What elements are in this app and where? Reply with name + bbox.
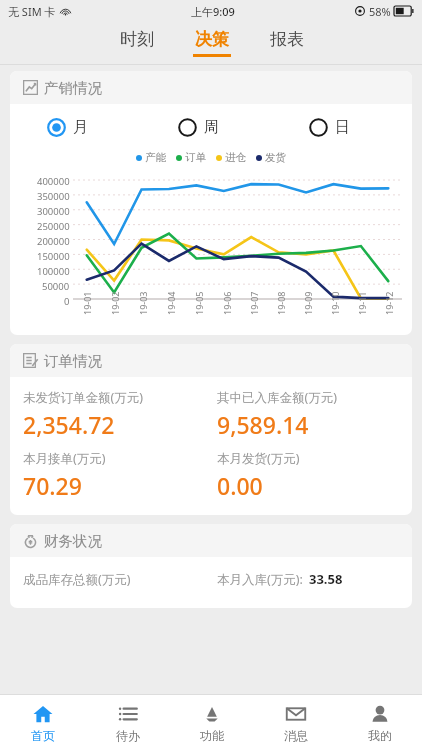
staticText: 进仓 bbox=[225, 151, 246, 164]
button[interactable]: 订单 bbox=[23, 344, 412, 377]
staticText: 19-05 bbox=[193, 291, 205, 315]
staticText: 产销情况 bbox=[44, 79, 102, 97]
button[interactable]: 财务 bbox=[23, 524, 412, 557]
staticText: 消息 bbox=[284, 728, 308, 743]
staticText: 350000 bbox=[37, 190, 70, 203]
staticText: 待办 bbox=[116, 728, 140, 743]
staticText: 19-08 bbox=[275, 291, 287, 315]
staticText: 150000 bbox=[37, 250, 70, 263]
staticText: 上午9:09 bbox=[191, 4, 235, 19]
staticText: 400000 bbox=[37, 175, 70, 188]
staticText: 300000 bbox=[37, 205, 70, 218]
staticText: 功能 bbox=[200, 728, 224, 743]
staticText: 0 bbox=[64, 295, 70, 308]
staticText: 70.29 bbox=[23, 470, 82, 501]
staticText: 首页 bbox=[31, 728, 55, 743]
staticText: 月 bbox=[73, 118, 88, 137]
staticText: 58% bbox=[369, 4, 391, 19]
staticText: 19-03 bbox=[137, 291, 149, 315]
staticText: 19-02 bbox=[109, 291, 121, 315]
staticText: 0.00 bbox=[217, 470, 263, 501]
staticText: 决策 bbox=[195, 29, 229, 50]
staticText: 本月发货(万元) bbox=[217, 450, 300, 467]
button[interactable]: 我的 bbox=[338, 695, 422, 750]
staticText: 订单情况 bbox=[44, 352, 102, 370]
staticText: 周 bbox=[204, 118, 219, 137]
staticText: 财务状况 bbox=[44, 532, 102, 550]
staticText: 19-10 bbox=[329, 291, 341, 315]
staticText: 其中已入库金额(万元) bbox=[217, 389, 338, 406]
button[interactable]: 报表 bbox=[249, 22, 324, 64]
staticText: 成品库存总额(万元) bbox=[23, 571, 217, 588]
other: 产销图表 bbox=[23, 80, 38, 95]
staticText: 200000 bbox=[37, 235, 70, 248]
button[interactable]: 决策 bbox=[174, 22, 249, 64]
button[interactable]: 时刻 bbox=[99, 22, 174, 64]
staticText: 33.58 bbox=[309, 570, 343, 588]
staticText: 100000 bbox=[37, 265, 70, 278]
staticText: 2,354.72 bbox=[23, 409, 115, 440]
staticText: 无 SIM 卡 bbox=[8, 4, 56, 19]
button[interactable]: 消息 bbox=[254, 695, 338, 750]
button[interactable]: 功能 bbox=[170, 695, 254, 750]
staticText: 时刻 bbox=[120, 29, 154, 50]
staticText: 19-11 bbox=[356, 291, 368, 315]
staticText: 250000 bbox=[37, 220, 70, 233]
button[interactable]: 日 bbox=[277, 114, 408, 141]
staticText: 未发货订单金额(万元) bbox=[23, 389, 144, 406]
button[interactable]: 产销图表 bbox=[23, 71, 412, 104]
staticText: 报表 bbox=[270, 29, 304, 50]
staticText: 订单 bbox=[185, 151, 206, 164]
staticText: 19-04 bbox=[165, 291, 177, 315]
other: 订单 bbox=[23, 353, 38, 368]
staticText: 9,589.14 bbox=[217, 409, 309, 440]
staticText: 19-06 bbox=[221, 291, 233, 315]
staticText: 本月接单(万元) bbox=[23, 450, 106, 467]
staticText: 19-09 bbox=[302, 291, 314, 315]
button[interactable]: 周 bbox=[146, 114, 277, 141]
staticText: 50000 bbox=[42, 280, 70, 293]
staticText: 日 bbox=[335, 118, 350, 137]
staticText: 19-01 bbox=[81, 291, 93, 315]
staticText: 产能 bbox=[145, 151, 166, 164]
button[interactable]: 待办 bbox=[85, 695, 170, 750]
staticText: 我的 bbox=[368, 728, 392, 743]
button[interactable]: 首页 bbox=[0, 695, 85, 750]
staticText: 19-12 bbox=[383, 291, 395, 315]
button[interactable]: 月 bbox=[14, 114, 146, 141]
staticText: 发货 bbox=[265, 151, 286, 164]
staticText: 本月入库(万元): bbox=[217, 571, 303, 588]
other: 财务 bbox=[23, 533, 38, 548]
staticText: 19-07 bbox=[248, 291, 260, 315]
